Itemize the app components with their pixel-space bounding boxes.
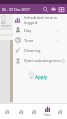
button[interactable]: Stats [41, 104, 54, 119]
staticText: Day [24, 28, 32, 33]
button[interactable]: 06 - 07 Dec 2017 [2, 5, 30, 13]
staticText: Time [24, 38, 34, 43]
button[interactable]: Add [28, 104, 41, 119]
button[interactable]: Me [54, 104, 67, 119]
button[interactable]: History [50, 6, 57, 13]
button[interactable]: Time [13, 35, 67, 45]
staticText: › [57, 38, 59, 43]
staticText: Cleaning [24, 48, 41, 53]
button[interactable]: Home [0, 104, 14, 119]
button[interactable]: Cleaning [13, 45, 67, 55]
staticText: Apply [35, 74, 48, 80]
staticText: 20 [1, 20, 6, 25]
staticText: › [57, 28, 59, 33]
button[interactable]: Apply [28, 73, 50, 81]
staticText: minutes [1, 24, 11, 28]
button[interactable]: Scheduled time is logged [13, 14, 67, 25]
button[interactable]: Tasks [14, 104, 28, 119]
button[interactable]: Start subcategories [13, 55, 67, 66]
button[interactable]: Search [42, 6, 49, 13]
button[interactable]: Calendar [58, 6, 65, 13]
staticText: Start subcategories [24, 58, 61, 63]
button[interactable]: Day [13, 25, 67, 35]
staticText: Scheduled time is logged [24, 15, 65, 25]
staticText: Stats [44, 113, 51, 117]
staticText: 06 - 07 Dec 2017 [2, 7, 30, 12]
